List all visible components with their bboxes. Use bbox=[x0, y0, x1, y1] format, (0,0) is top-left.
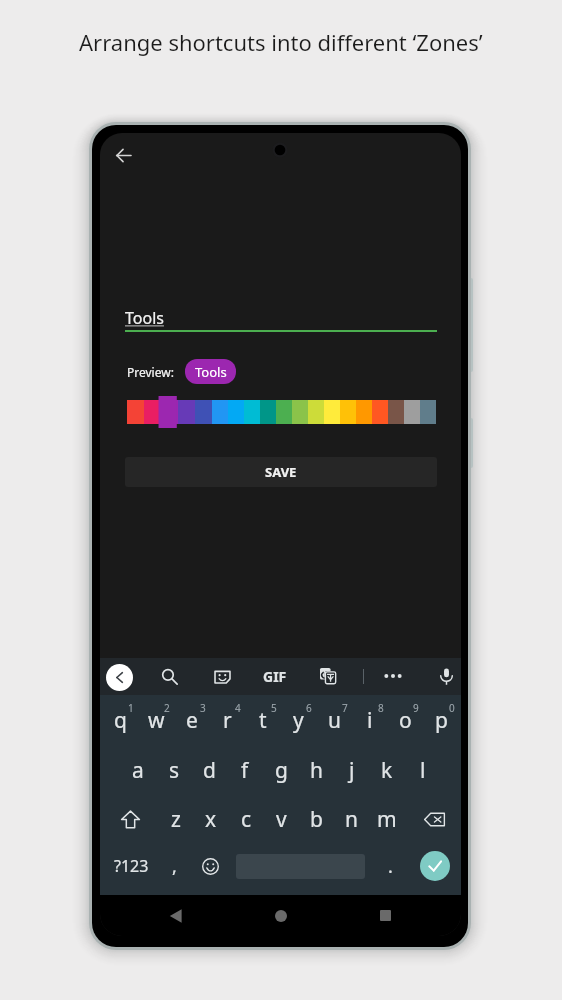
staticText: 4 bbox=[235, 701, 241, 715]
button[interactable]: s bbox=[156, 746, 192, 794]
staticText: w bbox=[148, 706, 165, 735]
button[interactable]: p bbox=[423, 696, 459, 744]
staticText: f bbox=[241, 756, 249, 785]
button[interactable]: Search bbox=[155, 662, 183, 690]
staticText: r bbox=[223, 706, 232, 735]
staticText: t bbox=[259, 706, 267, 735]
button[interactable]: Back bbox=[152, 895, 200, 936]
button[interactable]: j bbox=[334, 746, 370, 794]
staticText: Tools bbox=[195, 363, 227, 381]
button[interactable]: z bbox=[158, 795, 193, 843]
button[interactable]: w bbox=[138, 696, 174, 744]
button[interactable]: Voice input bbox=[432, 662, 460, 690]
button[interactable]: t bbox=[245, 696, 281, 744]
button[interactable]: h bbox=[298, 746, 334, 794]
button[interactable]: x bbox=[193, 795, 228, 843]
button[interactable]: c bbox=[229, 795, 264, 843]
staticText: 9 bbox=[413, 701, 419, 715]
staticText: SAVE bbox=[265, 463, 297, 481]
staticText: l bbox=[420, 756, 426, 785]
staticText: y bbox=[293, 706, 304, 735]
button[interactable]: Collapse keyboard bbox=[106, 664, 133, 691]
staticText: h bbox=[310, 756, 323, 785]
button[interactable]: Space bbox=[229, 842, 371, 890]
staticText: a bbox=[132, 756, 144, 785]
button[interactable]: e bbox=[174, 696, 210, 744]
button[interactable]: SAVE bbox=[125, 457, 437, 487]
button[interactable]: i bbox=[352, 696, 388, 744]
staticText: d bbox=[203, 756, 216, 785]
button[interactable]: d bbox=[191, 746, 227, 794]
button[interactable]: v bbox=[264, 795, 299, 843]
staticText: 8 bbox=[378, 701, 384, 715]
button[interactable]: Navigate back bbox=[105, 137, 141, 173]
button[interactable]: o bbox=[387, 696, 423, 744]
button[interactable]: k bbox=[369, 746, 405, 794]
button[interactable]: l bbox=[405, 746, 441, 794]
staticText: . bbox=[388, 854, 393, 879]
button[interactable]: y bbox=[280, 696, 316, 744]
staticText: 3 bbox=[200, 701, 206, 715]
staticText: i bbox=[367, 706, 373, 735]
staticText: 7 bbox=[342, 701, 348, 715]
button[interactable]: m bbox=[369, 795, 404, 843]
staticText: j bbox=[349, 756, 355, 785]
button[interactable]: Stickers bbox=[208, 662, 236, 690]
staticText: 6 bbox=[306, 701, 312, 715]
button[interactable]: b bbox=[299, 795, 334, 843]
button[interactable]: Home bbox=[257, 895, 305, 936]
staticText: k bbox=[381, 756, 393, 785]
button[interactable]: Enter bbox=[410, 842, 460, 890]
button[interactable]: More options bbox=[379, 662, 407, 690]
staticText: Preview: bbox=[127, 364, 174, 380]
button[interactable]: n bbox=[334, 795, 369, 843]
button[interactable]: ?123 bbox=[106, 842, 156, 890]
button[interactable]: GIF bbox=[260, 664, 290, 688]
staticText: n bbox=[345, 805, 358, 834]
button[interactable]: , bbox=[157, 842, 191, 890]
button[interactable]: Tools bbox=[185, 359, 236, 384]
button[interactable]: f bbox=[227, 746, 263, 794]
staticText: 1 bbox=[128, 701, 134, 715]
button[interactable]: u bbox=[316, 696, 352, 744]
staticText: Tools bbox=[125, 307, 164, 329]
staticText: e bbox=[186, 706, 198, 735]
staticText: z bbox=[171, 805, 181, 834]
button[interactable]: Shift bbox=[105, 795, 155, 843]
button[interactable]: . bbox=[373, 842, 407, 890]
button[interactable]: a bbox=[120, 746, 156, 794]
staticText: , bbox=[172, 854, 177, 879]
staticText: c bbox=[241, 805, 252, 834]
button[interactable] bbox=[144, 400, 161, 424]
button[interactable]: Emoji bbox=[193, 842, 227, 890]
staticText: 5 bbox=[271, 701, 277, 715]
button[interactable]: r bbox=[209, 696, 245, 744]
button[interactable]: Translate bbox=[314, 662, 342, 690]
staticText: m bbox=[377, 805, 397, 834]
staticText: p bbox=[435, 706, 448, 735]
button[interactable]: q bbox=[102, 696, 138, 744]
staticText: s bbox=[169, 756, 180, 785]
staticText: q bbox=[114, 706, 127, 735]
button[interactable]: g bbox=[263, 746, 299, 794]
button[interactable]: Backspace bbox=[409, 795, 459, 843]
button[interactable]: Recents bbox=[361, 895, 409, 936]
